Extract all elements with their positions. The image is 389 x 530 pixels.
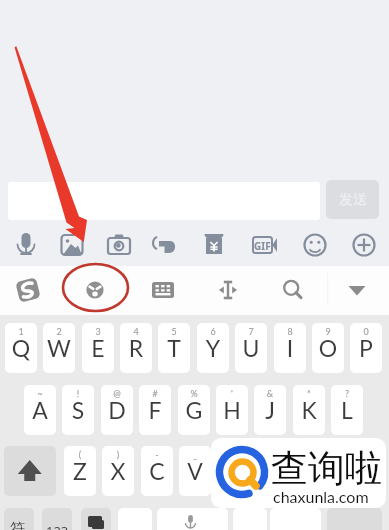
staticText: 5 — [158, 326, 190, 337]
button[interactable]: 5 — [158, 323, 190, 373]
button[interactable]: 0 — [350, 323, 382, 373]
button[interactable]: Voice — [7, 223, 45, 265]
staticText: 9 — [312, 326, 344, 337]
button[interactable]: 4 — [120, 323, 152, 373]
button[interactable]: Poke — [147, 223, 185, 265]
staticText: 8 — [274, 326, 306, 337]
button[interactable]: Space — [157, 508, 228, 530]
button[interactable]: Collapse — [336, 269, 378, 312]
button[interactable]: ! — [62, 385, 94, 435]
staticText: I — [274, 334, 306, 362]
staticText: = — [256, 449, 288, 460]
staticText: E — [82, 334, 114, 362]
button[interactable]: 7 — [235, 323, 267, 373]
button[interactable]: Emoji — [296, 223, 334, 265]
staticText: W — [43, 334, 75, 362]
staticText: / — [294, 449, 326, 460]
staticText: N — [256, 457, 288, 485]
staticText: O — [312, 334, 344, 362]
staticText: - — [141, 449, 173, 460]
staticText: F — [139, 396, 171, 424]
staticText: B — [218, 457, 250, 485]
button[interactable]: # — [139, 385, 171, 435]
staticText: U — [235, 334, 267, 362]
staticText: * — [293, 388, 325, 399]
button[interactable]: ( — [64, 446, 96, 496]
button[interactable]: ? — [331, 385, 363, 435]
button[interactable]: @ — [101, 385, 133, 435]
staticText: 123 — [46, 522, 69, 530]
button[interactable]: - — [141, 446, 173, 496]
button[interactable]: ' — [216, 385, 248, 435]
staticText: T — [158, 334, 190, 362]
staticText: Z — [64, 457, 96, 485]
staticText: 0 — [350, 326, 382, 337]
button[interactable]: = — [256, 446, 288, 496]
button[interactable]: Sogou — [7, 269, 49, 312]
button[interactable]: Camera — [100, 223, 138, 265]
staticText: # — [139, 388, 171, 399]
button[interactable]: 3 — [82, 323, 114, 373]
staticText: 发送 — [339, 191, 367, 209]
button[interactable]: Symbols — [4, 508, 34, 530]
staticText: R — [120, 334, 152, 362]
staticText: ? — [331, 388, 363, 399]
button[interactable]: 8 — [274, 323, 306, 373]
staticText: M — [294, 457, 326, 485]
button[interactable]: Red packet — [195, 223, 233, 265]
button[interactable]: & — [254, 385, 286, 435]
staticText: ) — [102, 449, 134, 460]
button[interactable]: Numbers — [42, 508, 72, 530]
button[interactable]: Shift — [4, 446, 56, 496]
button[interactable]: % — [178, 385, 210, 435]
staticText: H — [216, 396, 248, 424]
button[interactable]: Search — [272, 269, 314, 312]
staticText: 6 — [197, 326, 229, 337]
staticText: L — [331, 396, 363, 424]
staticText: 查询啦 — [271, 445, 382, 492]
button[interactable]: 1 — [5, 323, 37, 373]
button[interactable] — [8, 182, 320, 220]
staticText: GIF — [254, 239, 271, 253]
staticText: & — [254, 388, 286, 399]
button[interactable]: GIF — [245, 223, 283, 265]
button[interactable]: Emoji — [74, 269, 116, 312]
button[interactable]: 发送 — [326, 180, 379, 219]
staticText: 4 — [120, 326, 152, 337]
staticText: chaxunla.com — [273, 487, 369, 506]
button[interactable]: Move cursor — [207, 269, 249, 312]
button[interactable]: Keyboard — [142, 269, 184, 312]
staticText: % — [178, 388, 210, 399]
button[interactable]: / — [294, 446, 326, 496]
button[interactable]: + — [218, 446, 250, 496]
staticText: 7 — [235, 326, 267, 337]
button[interactable]: Photo — [53, 223, 91, 265]
button[interactable]: Layout — [81, 508, 111, 530]
button[interactable]: * — [293, 385, 325, 435]
button[interactable]: ~ — [24, 385, 56, 435]
staticText: ( — [64, 449, 96, 460]
staticText: P — [350, 334, 382, 362]
button[interactable]: 9 — [312, 323, 344, 373]
button[interactable]: More — [345, 223, 383, 265]
staticText: C — [141, 457, 173, 485]
staticText: ! — [62, 388, 94, 399]
staticText: _ — [179, 449, 211, 460]
staticText: D — [101, 396, 133, 424]
button[interactable]: 6 — [197, 323, 229, 373]
staticText: K — [293, 396, 325, 424]
staticText: V — [179, 457, 211, 485]
button[interactable]: ) — [102, 446, 134, 496]
staticText: G — [178, 396, 210, 424]
staticText: S — [62, 396, 94, 424]
button[interactable]: Backspace — [331, 446, 385, 496]
button[interactable]: _ — [179, 446, 211, 496]
staticText: 符 — [10, 520, 25, 530]
staticText: Y — [197, 334, 229, 362]
staticText: + — [218, 449, 250, 460]
button[interactable]: 2 — [43, 323, 75, 373]
